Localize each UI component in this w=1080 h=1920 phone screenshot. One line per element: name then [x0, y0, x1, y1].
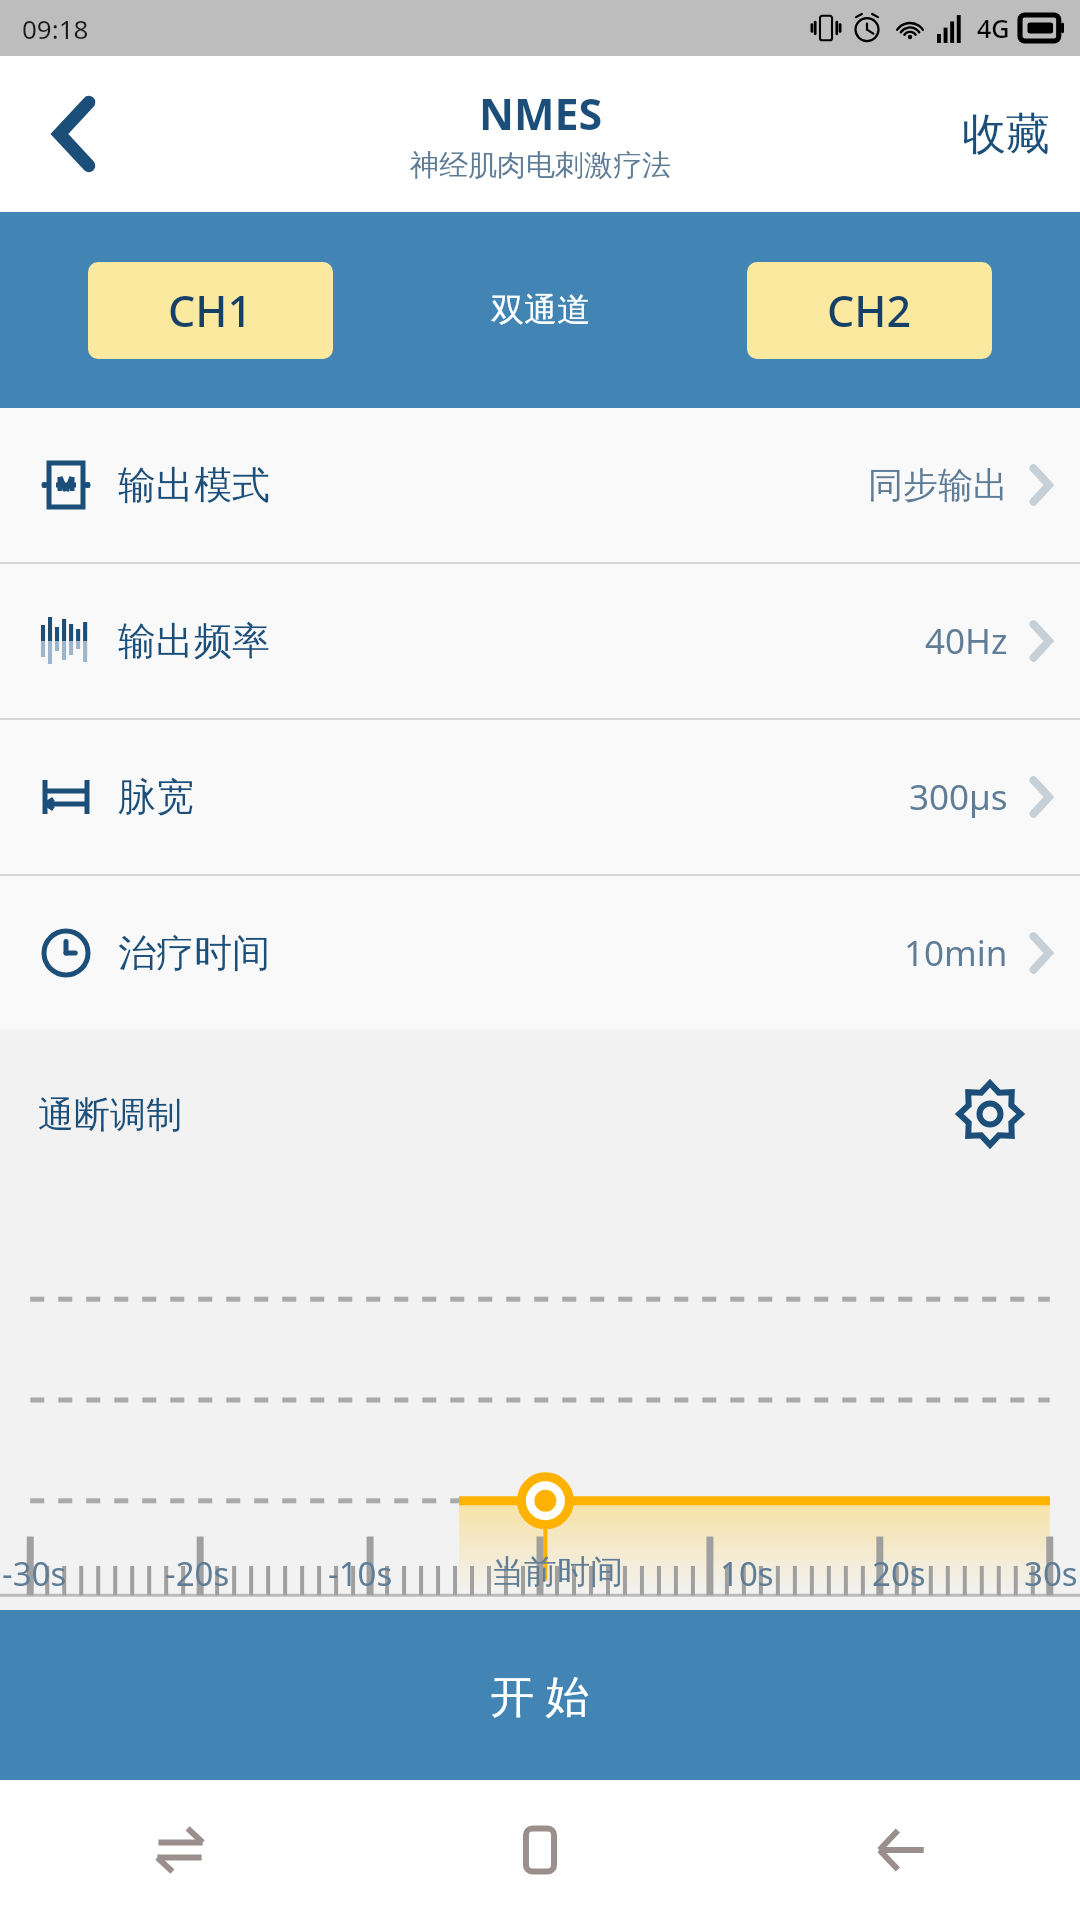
staticText: 双通道	[491, 289, 590, 331]
staticText: 同步输出	[868, 463, 1008, 507]
staticText: CH1	[168, 281, 253, 340]
button[interactable]: 收藏	[962, 56, 1080, 212]
staticText: 4G	[977, 11, 1010, 45]
staticText: 开 始	[490, 1665, 590, 1725]
button[interactable]: CH2	[747, 262, 992, 359]
staticText: 10min	[904, 929, 1008, 977]
button[interactable]: 治疗时间	[0, 876, 1080, 1030]
staticText: 30s	[1024, 1551, 1078, 1596]
staticText: 20s	[872, 1551, 926, 1596]
button[interactable]: Switch apps	[0, 1780, 360, 1920]
button[interactable]: 脉宽	[0, 720, 1080, 874]
staticText: -20s	[165, 1551, 230, 1596]
staticText: NMES	[479, 84, 603, 143]
button[interactable]: 开 始	[0, 1610, 1080, 1780]
staticText: 300µs	[909, 773, 1008, 821]
staticText: 收藏	[962, 107, 1050, 162]
button[interactable]: CH1	[88, 262, 333, 359]
staticText: 输出频率	[118, 617, 270, 665]
staticText: 当前时间	[491, 1551, 623, 1593]
staticText: CH2	[827, 281, 912, 340]
staticText: 10s	[720, 1551, 774, 1596]
staticText: 脉宽	[118, 773, 194, 821]
button[interactable]: Recents	[360, 1780, 720, 1920]
button[interactable]: Settings	[952, 1076, 1028, 1152]
staticText: 治疗时间	[118, 929, 270, 977]
staticText: -10s	[328, 1551, 393, 1596]
staticText: -30s	[2, 1551, 67, 1596]
button[interactable]: 通断调制	[0, 1038, 1080, 1190]
staticText: 通断调制	[38, 1092, 182, 1137]
staticText: 40Hz	[925, 617, 1008, 665]
staticText: 神经肌肉电刺激疗法	[410, 147, 671, 184]
staticText: 09:18	[22, 11, 89, 46]
button[interactable]: 输出模式	[0, 408, 1080, 562]
staticText: 输出模式	[118, 461, 270, 509]
button[interactable]: 输出频率	[0, 564, 1080, 718]
button[interactable]: Back	[720, 1780, 1080, 1920]
button[interactable]: Back	[0, 56, 150, 212]
